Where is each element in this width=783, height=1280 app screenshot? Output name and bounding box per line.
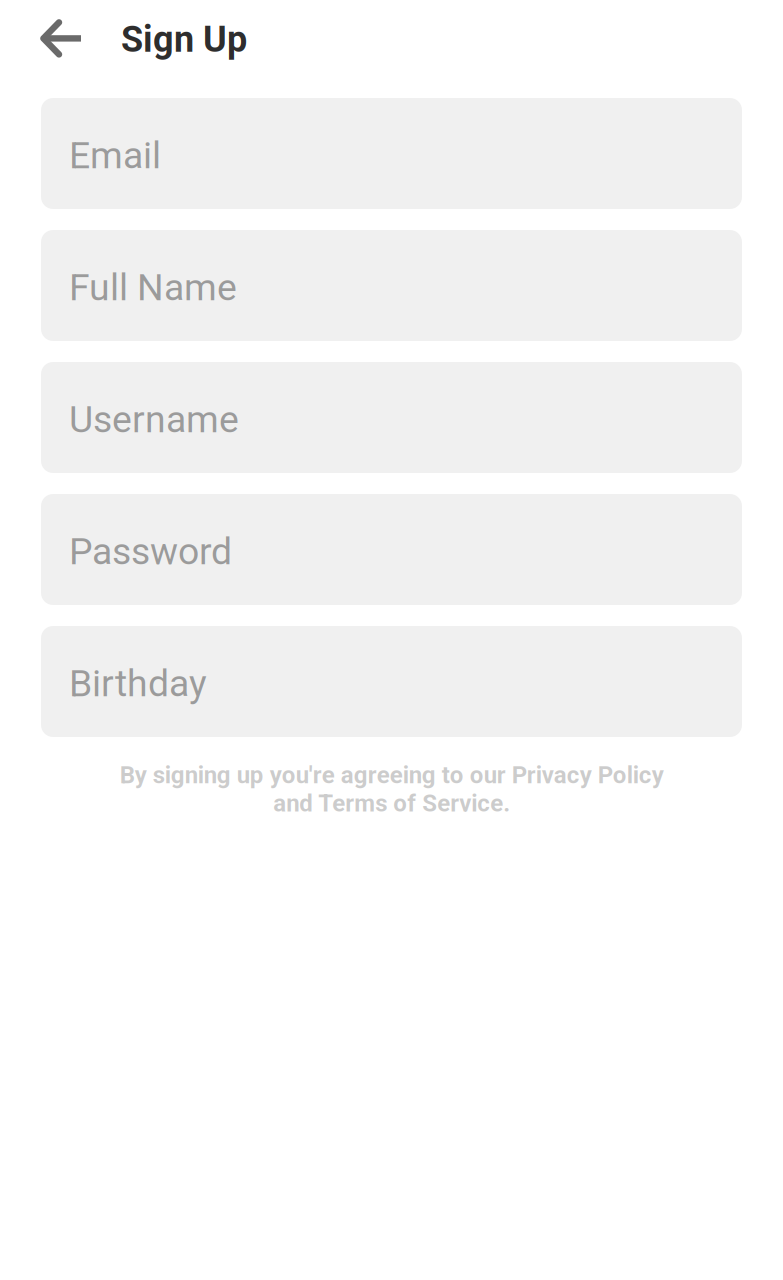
button[interactable]: Password <box>41 494 742 605</box>
button[interactable]: Email <box>41 98 742 209</box>
button[interactable]: Back <box>0 9 121 70</box>
staticText: Email <box>69 134 161 177</box>
button[interactable]: Birthday <box>41 626 742 737</box>
staticText: Birthday <box>69 662 207 705</box>
staticText: Username <box>69 398 239 441</box>
staticText: Full Name <box>69 266 237 309</box>
staticText: By signing up you're agreeing to our Pri… <box>119 761 663 817</box>
staticText: Password <box>69 530 232 573</box>
button[interactable]: Full Name <box>41 230 742 341</box>
button[interactable]: Username <box>41 362 742 473</box>
staticText: Sign Up <box>121 18 247 61</box>
